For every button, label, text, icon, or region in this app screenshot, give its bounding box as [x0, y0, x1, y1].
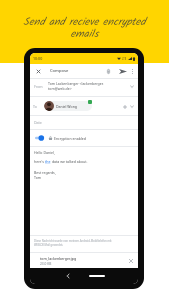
button[interactable]: Home	[89, 275, 105, 277]
button[interactable]: Date	[30, 116, 138, 129]
staticText: From	[34, 84, 43, 89]
staticText: Tom Lackenberger <lackenberger. tom@web.…	[48, 81, 104, 91]
button[interactable]: Close	[33, 66, 43, 76]
button[interactable]: Attach file	[104, 67, 113, 76]
button[interactable]: More options	[128, 67, 136, 75]
button[interactable]: Back	[63, 271, 73, 281]
staticText: Send and recieve encrypted emails	[8, 14, 161, 43]
staticText: data we talked about.	[51, 159, 88, 164]
staticText: To	[33, 104, 37, 109]
staticText: Date	[34, 120, 42, 125]
button[interactable]: From	[30, 79, 138, 96]
staticText: Compose	[50, 68, 69, 74]
staticText: tom_lackenberger.jpg	[40, 256, 77, 261]
staticText: Best regards, Tom	[34, 170, 56, 180]
staticText: Encryption enabled	[54, 136, 86, 141]
staticText: the	[45, 159, 51, 164]
staticText: 10:00	[33, 56, 43, 61]
staticText: Diese Nachricht wurde von meinem Android…	[34, 239, 112, 247]
staticText: Daniel Wong	[56, 104, 77, 109]
staticText: 23.0 KB	[40, 262, 52, 266]
button[interactable]: Remove attachment	[126, 256, 135, 265]
staticText: LTE	[122, 57, 127, 61]
button[interactable]: To	[30, 97, 138, 115]
button[interactable]: Add contact	[121, 103, 128, 110]
button[interactable]: Encryption enabled	[30, 130, 138, 146]
staticText: here's	[34, 159, 45, 164]
button[interactable]: Send	[118, 67, 127, 76]
staticText: Hello Daniel,	[34, 150, 55, 155]
button[interactable]: tom_lackenberger.jpg	[30, 253, 138, 268]
